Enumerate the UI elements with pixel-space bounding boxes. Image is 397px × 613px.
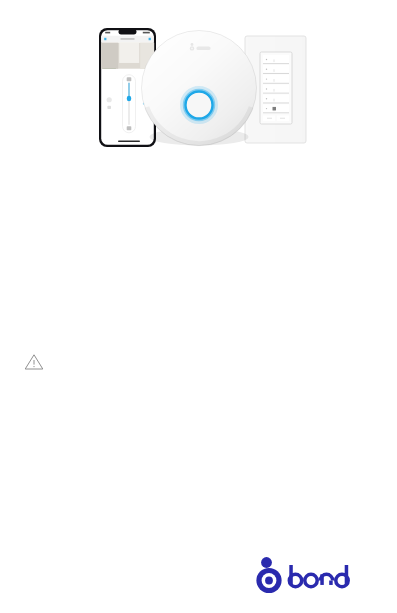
- button[interactable]: Bond logo: [255, 553, 367, 599]
- button[interactable]: Warning: [24, 352, 44, 372]
